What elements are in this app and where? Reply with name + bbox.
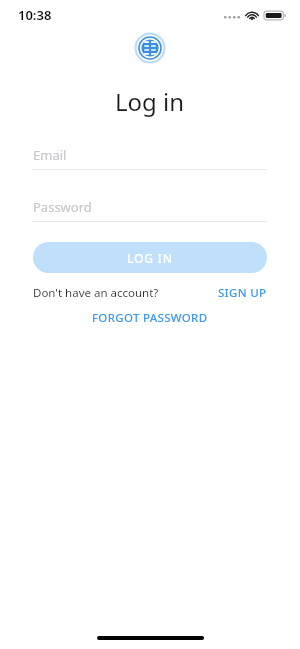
button[interactable]: SIGN UP [218, 285, 267, 301]
other: Home indicator [97, 636, 204, 640]
button[interactable]: Don't have an account? [33, 285, 159, 301]
button[interactable]: Email [33, 146, 267, 170]
button[interactable]: FORGOT PASSWORD [92, 310, 208, 326]
staticText: 10:38 [18, 6, 52, 24]
button[interactable]: LOG IN [33, 242, 267, 273]
staticText: Password [33, 198, 92, 216]
staticText: SIGN UP [218, 285, 267, 301]
staticText: LOG IN [127, 250, 173, 266]
staticText: FORGOT PASSWORD [92, 310, 208, 326]
button[interactable]: Password [33, 198, 267, 222]
staticText: Log in [115, 85, 185, 118]
staticText: Email [33, 146, 67, 164]
